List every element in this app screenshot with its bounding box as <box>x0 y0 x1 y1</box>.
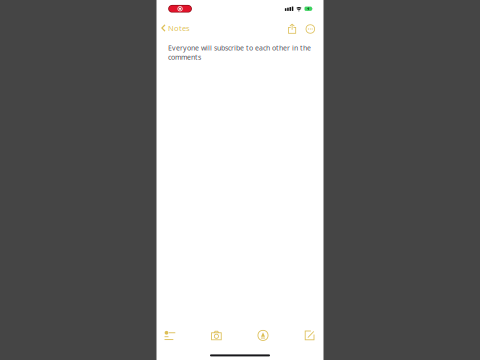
button[interactable]: Format <box>160 326 179 345</box>
button[interactable]: Markup <box>253 326 272 345</box>
button[interactable]: More <box>302 20 318 36</box>
button[interactable]: Camera <box>207 326 226 345</box>
button[interactable]: Share <box>285 20 302 36</box>
staticText: Notes <box>168 23 190 33</box>
staticText: Everyone will subscribe to each other in… <box>168 43 311 62</box>
button[interactable]: New Note <box>300 326 319 345</box>
button[interactable]: Notes <box>156 19 194 37</box>
